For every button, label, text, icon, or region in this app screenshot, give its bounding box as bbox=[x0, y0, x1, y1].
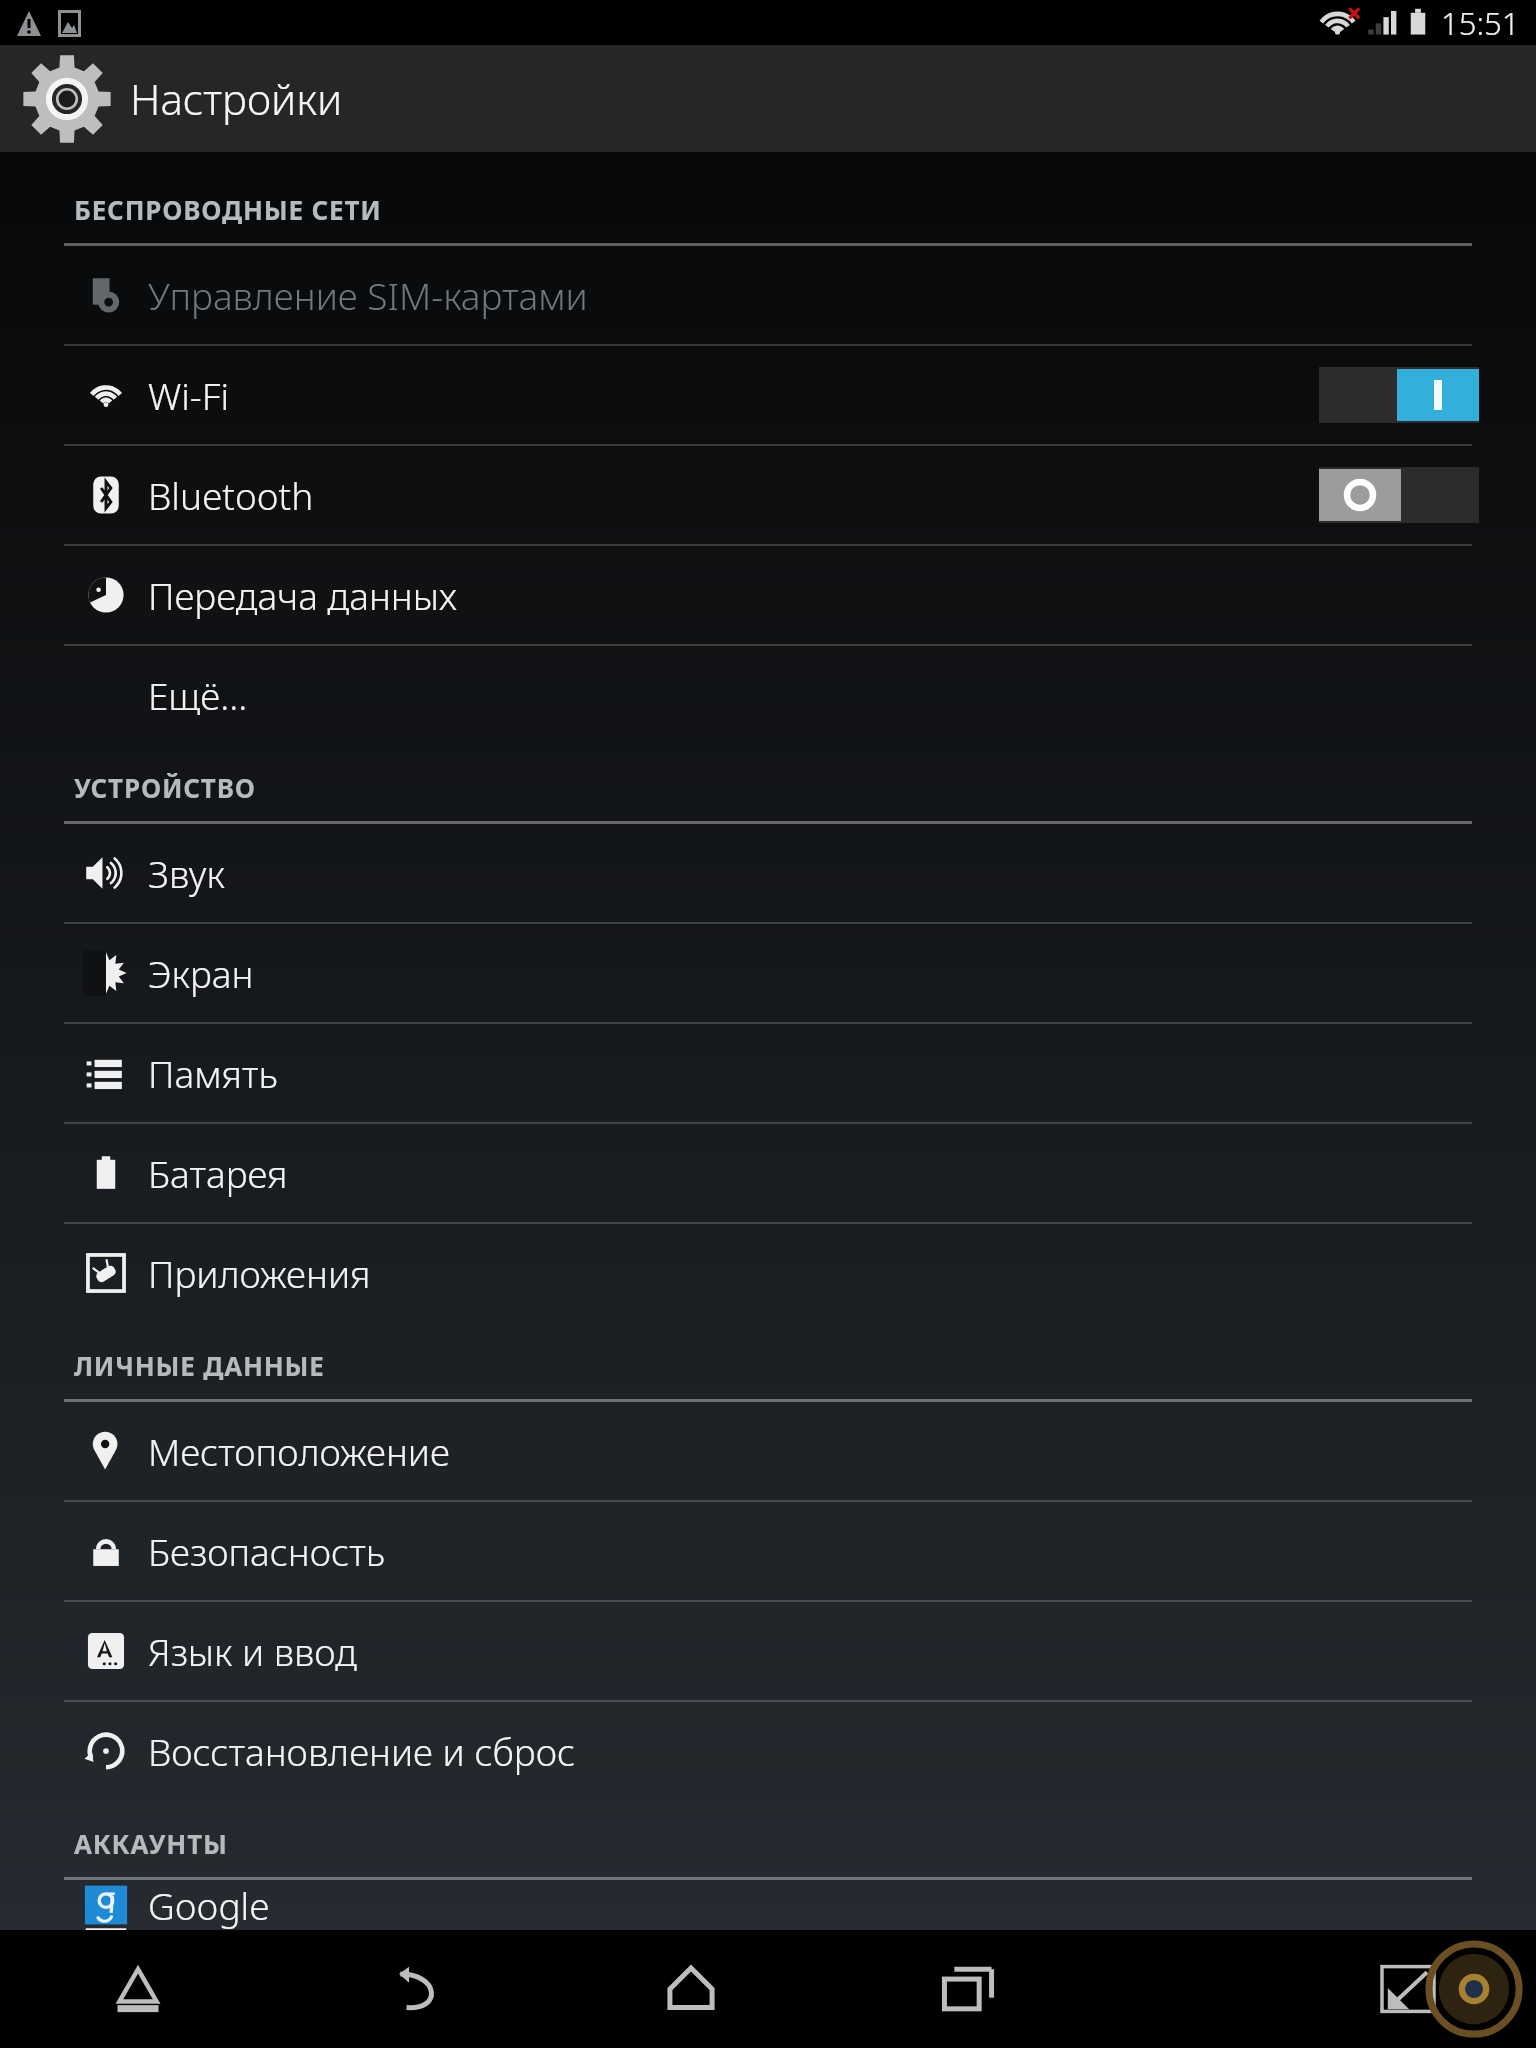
button[interactable]: Wi-Fi bbox=[0, 346, 1536, 444]
staticText: Bluetooth bbox=[148, 470, 314, 520]
button[interactable]: Google bbox=[0, 1880, 1536, 1930]
button[interactable]: Управление SIM-картами bbox=[0, 246, 1536, 344]
button[interactable]: Bluetooth off bbox=[1319, 467, 1479, 523]
staticText: Передача данных bbox=[148, 570, 457, 620]
staticText: 15:51 bbox=[1441, 2, 1520, 44]
staticText: Батарея bbox=[148, 1148, 288, 1198]
button[interactable]: Язык и ввод bbox=[0, 1602, 1536, 1700]
button[interactable]: Передача данных bbox=[0, 546, 1536, 644]
staticText: ЛИЧНЫЕ ДАННЫЕ bbox=[74, 1348, 325, 1383]
button[interactable]: Экран bbox=[0, 924, 1536, 1022]
button[interactable]: Батарея bbox=[0, 1124, 1536, 1222]
staticText: Безопасность bbox=[148, 1526, 386, 1576]
button[interactable]: Bluetooth bbox=[0, 446, 1536, 544]
button[interactable]: Ещё... bbox=[0, 646, 1536, 744]
staticText: Звук bbox=[148, 848, 225, 898]
staticText: Приложения bbox=[148, 1248, 371, 1298]
staticText: Восстановление и сброс bbox=[148, 1726, 576, 1776]
staticText: Управление SIM-картами bbox=[148, 270, 588, 320]
staticText: Wi-Fi bbox=[148, 370, 230, 420]
staticText: Ещё... bbox=[148, 670, 248, 720]
button[interactable]: Местоположение bbox=[0, 1402, 1536, 1500]
staticText: Местоположение bbox=[148, 1426, 450, 1476]
staticText: АККАУНТЫ bbox=[74, 1826, 228, 1861]
button[interactable]: Home bbox=[552, 1930, 829, 2048]
button[interactable]: Back bbox=[276, 1930, 552, 2048]
button[interactable]: Приложения bbox=[0, 1224, 1536, 1322]
button[interactable]: Wi-Fi on bbox=[1319, 367, 1479, 423]
staticText: УСТРОЙСТВО bbox=[74, 770, 256, 805]
button[interactable]: Settings bbox=[0, 45, 1536, 152]
staticText: Память bbox=[148, 1048, 278, 1098]
other: Settings bbox=[20, 52, 114, 146]
staticText: Google bbox=[148, 1880, 270, 1930]
staticText: Настройки bbox=[130, 70, 343, 127]
staticText: Экран bbox=[148, 948, 254, 998]
button[interactable]: Восстановление и сброс bbox=[0, 1702, 1536, 1800]
button[interactable]: Recent apps bbox=[829, 1930, 1106, 2048]
button[interactable]: Звук bbox=[0, 824, 1536, 922]
staticText: БЕСПРОВОДНЫЕ СЕТИ bbox=[74, 192, 382, 227]
button[interactable]: Menu bbox=[0, 1930, 276, 2048]
button[interactable]: Память bbox=[0, 1024, 1536, 1122]
button[interactable]: Expand bbox=[1380, 1961, 1436, 2017]
button[interactable]: Безопасность bbox=[0, 1502, 1536, 1600]
staticText: Язык и ввод bbox=[148, 1626, 357, 1676]
